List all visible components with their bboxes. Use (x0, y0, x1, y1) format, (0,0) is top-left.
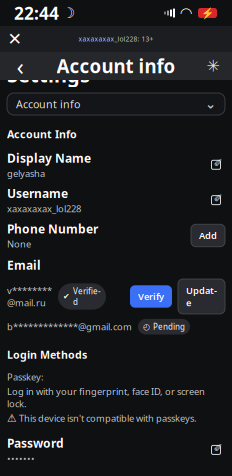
button[interactable]: Account info (7, 93, 225, 115)
button[interactable]: Add (191, 224, 225, 247)
staticText: None (7, 238, 31, 250)
staticText: Account info (56, 54, 175, 78)
staticText: Settings (7, 61, 90, 88)
staticText: Username (7, 185, 68, 201)
staticText: ⌄ (205, 96, 216, 111)
staticText: Password (7, 435, 64, 451)
staticText: Log in with your fingerprint, face ID, o… (7, 385, 205, 410)
staticText: ✳ (206, 57, 219, 75)
staticText: Verified (73, 286, 101, 307)
staticText: ••••••• (7, 452, 35, 465)
staticText: gelyasha (7, 167, 45, 179)
staticText: Pending (153, 321, 185, 332)
button[interactable]: Back (4, 52, 36, 80)
staticText: ⚡ (201, 7, 214, 19)
staticText: ✔ (63, 292, 70, 301)
staticText: 22:44 (14, 1, 59, 24)
staticText: ◠ (180, 5, 191, 21)
staticText: ☽ (62, 5, 75, 21)
staticText: Account Info (7, 127, 77, 141)
button[interactable]: Update (178, 279, 225, 314)
staticText: ✕ (7, 29, 22, 49)
staticText: ✐ (213, 157, 222, 169)
staticText: xaxaxaxax_lol228 (7, 202, 81, 215)
staticText: ✐ (213, 193, 222, 205)
staticText: Account info (16, 97, 80, 111)
staticText: ✐ (213, 442, 222, 454)
button[interactable]: Edit (207, 156, 225, 174)
staticText: This device isn't compatible with passke… (19, 412, 197, 424)
staticText: Verify (138, 290, 164, 303)
button[interactable]: Edit (207, 191, 225, 209)
staticText: ‹ (16, 50, 23, 82)
button[interactable]: Loading (198, 52, 228, 80)
button[interactable]: Close (0, 26, 30, 52)
staticText: Update (186, 284, 217, 309)
staticText: v********@mail.ru (7, 284, 52, 309)
staticText: Email (7, 257, 41, 273)
staticText: Login Methods (7, 347, 87, 362)
button[interactable]: Verify (130, 285, 172, 308)
staticText: Add (199, 229, 217, 242)
staticText: ◴ (143, 322, 150, 331)
button[interactable]: Edit (207, 441, 225, 459)
staticText: Phone Number (7, 221, 98, 237)
staticText: Display Name (7, 150, 91, 166)
staticText: xaxaxaxax_lol228: 13+ (78, 35, 153, 43)
staticText: ⚠ (7, 412, 17, 424)
staticText: Passkey: (7, 371, 44, 383)
staticText: b*************@gmail.com (7, 320, 132, 333)
